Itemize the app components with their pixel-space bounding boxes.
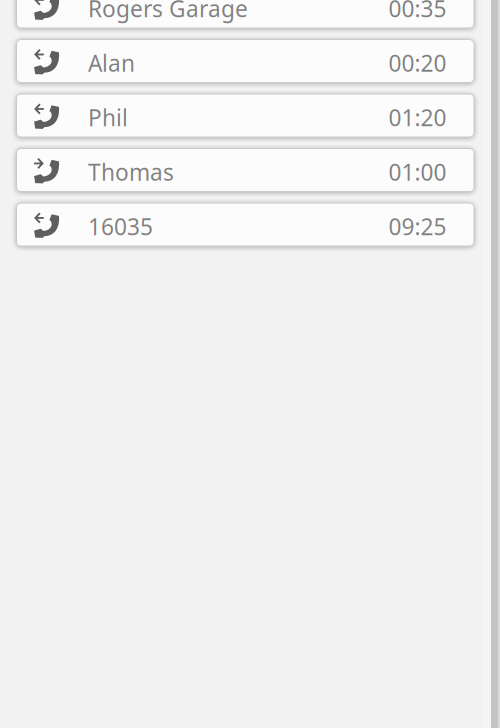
staticText: 01:00 [388,157,446,187]
staticText: 09:25 [388,211,446,241]
staticText: Alan [88,48,135,78]
button[interactable]: Alan [16,39,474,83]
button[interactable]: 16035 [16,202,474,246]
staticText: Thomas [88,157,174,187]
staticText: 00:20 [388,48,446,78]
button[interactable]: Rogers Garage [16,0,474,28]
button[interactable]: Phil [16,93,474,137]
staticText: 01:20 [388,102,446,132]
staticText: Rogers Garage [88,0,248,23]
staticText: Phil [88,102,128,132]
staticText: 16035 [88,211,153,241]
staticText: 00:35 [388,0,446,23]
button[interactable]: Thomas [16,148,474,192]
